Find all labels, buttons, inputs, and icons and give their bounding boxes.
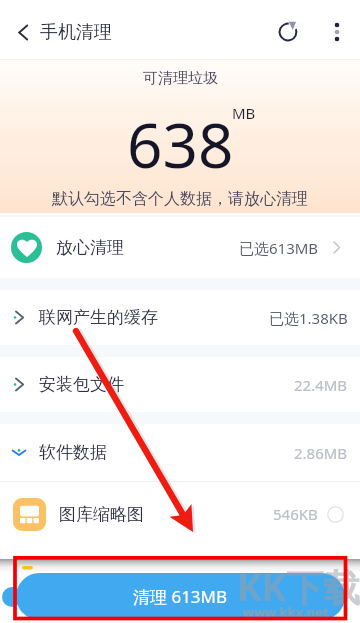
staticText: 可清理垃圾 [143,69,218,88]
staticText: 已选613MB [239,238,319,258]
button[interactable]: 放心清理 [0,217,360,278]
staticText: 联网产生的缓存 [39,307,158,328]
button[interactable]: Refresh [269,2,313,62]
staticText: 默认勾选不含个人数据，请放心清理 [52,189,308,209]
staticText: 546KB [273,504,318,524]
staticText: 2.86MB [294,443,348,463]
staticText: 手机清理 [40,21,112,44]
staticText: 放心清理 [56,237,124,258]
staticText: 安装包文件 [39,374,124,395]
staticText: 已选1.38KB [269,308,348,328]
button[interactable]: Back [0,2,40,62]
staticText: KK下载 [237,561,360,612]
button[interactable]: 安装包文件 [0,357,360,412]
button[interactable]: 图库缩略图 [0,482,360,546]
staticText: www.kkx.net [243,603,329,621]
staticText: 清理 613MB [133,585,228,608]
button[interactable]: 清理 613MB [16,573,345,620]
button[interactable]: 联网产生的缓存 [0,290,360,345]
staticText: 22.4MB [294,375,348,395]
button[interactable]: 软件数据 [0,424,360,481]
staticText: 软件数据 [39,442,107,463]
button[interactable]: More options [313,2,360,62]
staticText: MB [232,103,256,123]
staticText: 638 [127,102,234,186]
staticText: 图库缩略图 [59,504,144,525]
